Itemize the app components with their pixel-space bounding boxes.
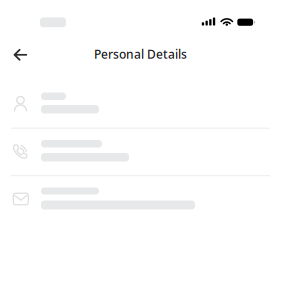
staticText: Personal Details — [94, 46, 187, 62]
button[interactable]: Phone, loading — [0, 128, 281, 175]
button[interactable]: Name, loading — [0, 80, 281, 128]
button[interactable]: Email, loading — [0, 175, 281, 223]
button[interactable]: Back — [3, 39, 37, 71]
